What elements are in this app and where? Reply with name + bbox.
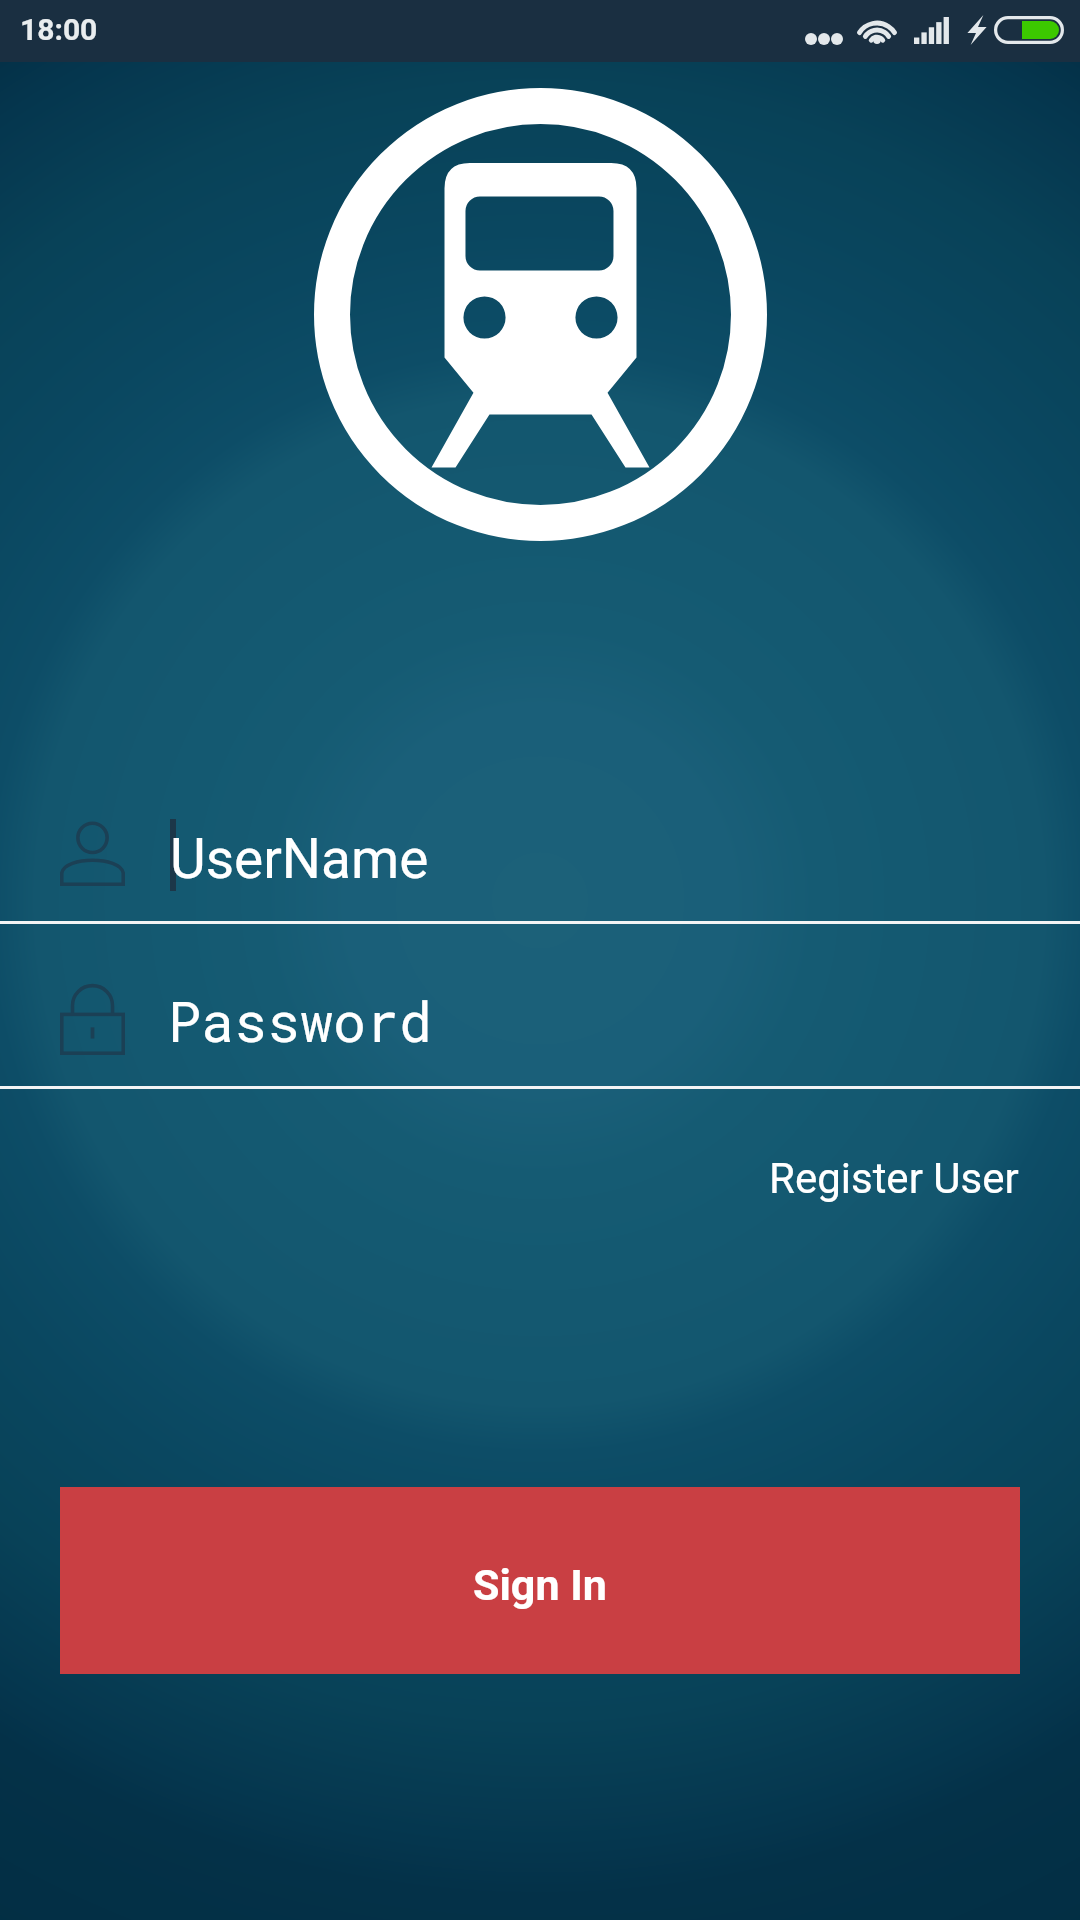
button[interactable]: Password bbox=[0, 924, 1080, 1086]
staticText: Register User bbox=[769, 1154, 1019, 1203]
other: Password bbox=[60, 985, 125, 1055]
staticText: UserName bbox=[170, 827, 429, 891]
staticText: 18:00 bbox=[20, 12, 98, 47]
button[interactable]: Sign In bbox=[60, 1487, 1020, 1674]
other: User name bbox=[60, 823, 125, 886]
staticText: Sign In bbox=[473, 1560, 607, 1610]
staticText: Password bbox=[168, 984, 433, 1057]
button[interactable]: Register User bbox=[739, 1123, 1049, 1233]
button[interactable]: User name bbox=[0, 760, 1080, 922]
